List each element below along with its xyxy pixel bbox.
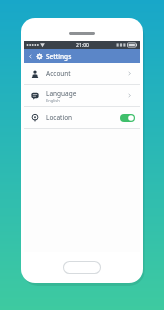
staticText: Location xyxy=(46,113,73,122)
button[interactable]: Back xyxy=(24,49,36,63)
button[interactable]: Account xyxy=(24,63,140,84)
staticText: Language xyxy=(46,89,77,98)
staticText: English xyxy=(46,98,60,103)
staticText: Settings xyxy=(46,52,72,61)
button[interactable]: Location xyxy=(24,107,140,128)
button[interactable]: Location toggle xyxy=(120,114,135,122)
button[interactable]: Home xyxy=(63,261,101,274)
button[interactable]: Language xyxy=(24,85,140,106)
staticText: 21:00 xyxy=(76,42,89,49)
staticText: Account xyxy=(46,69,71,78)
